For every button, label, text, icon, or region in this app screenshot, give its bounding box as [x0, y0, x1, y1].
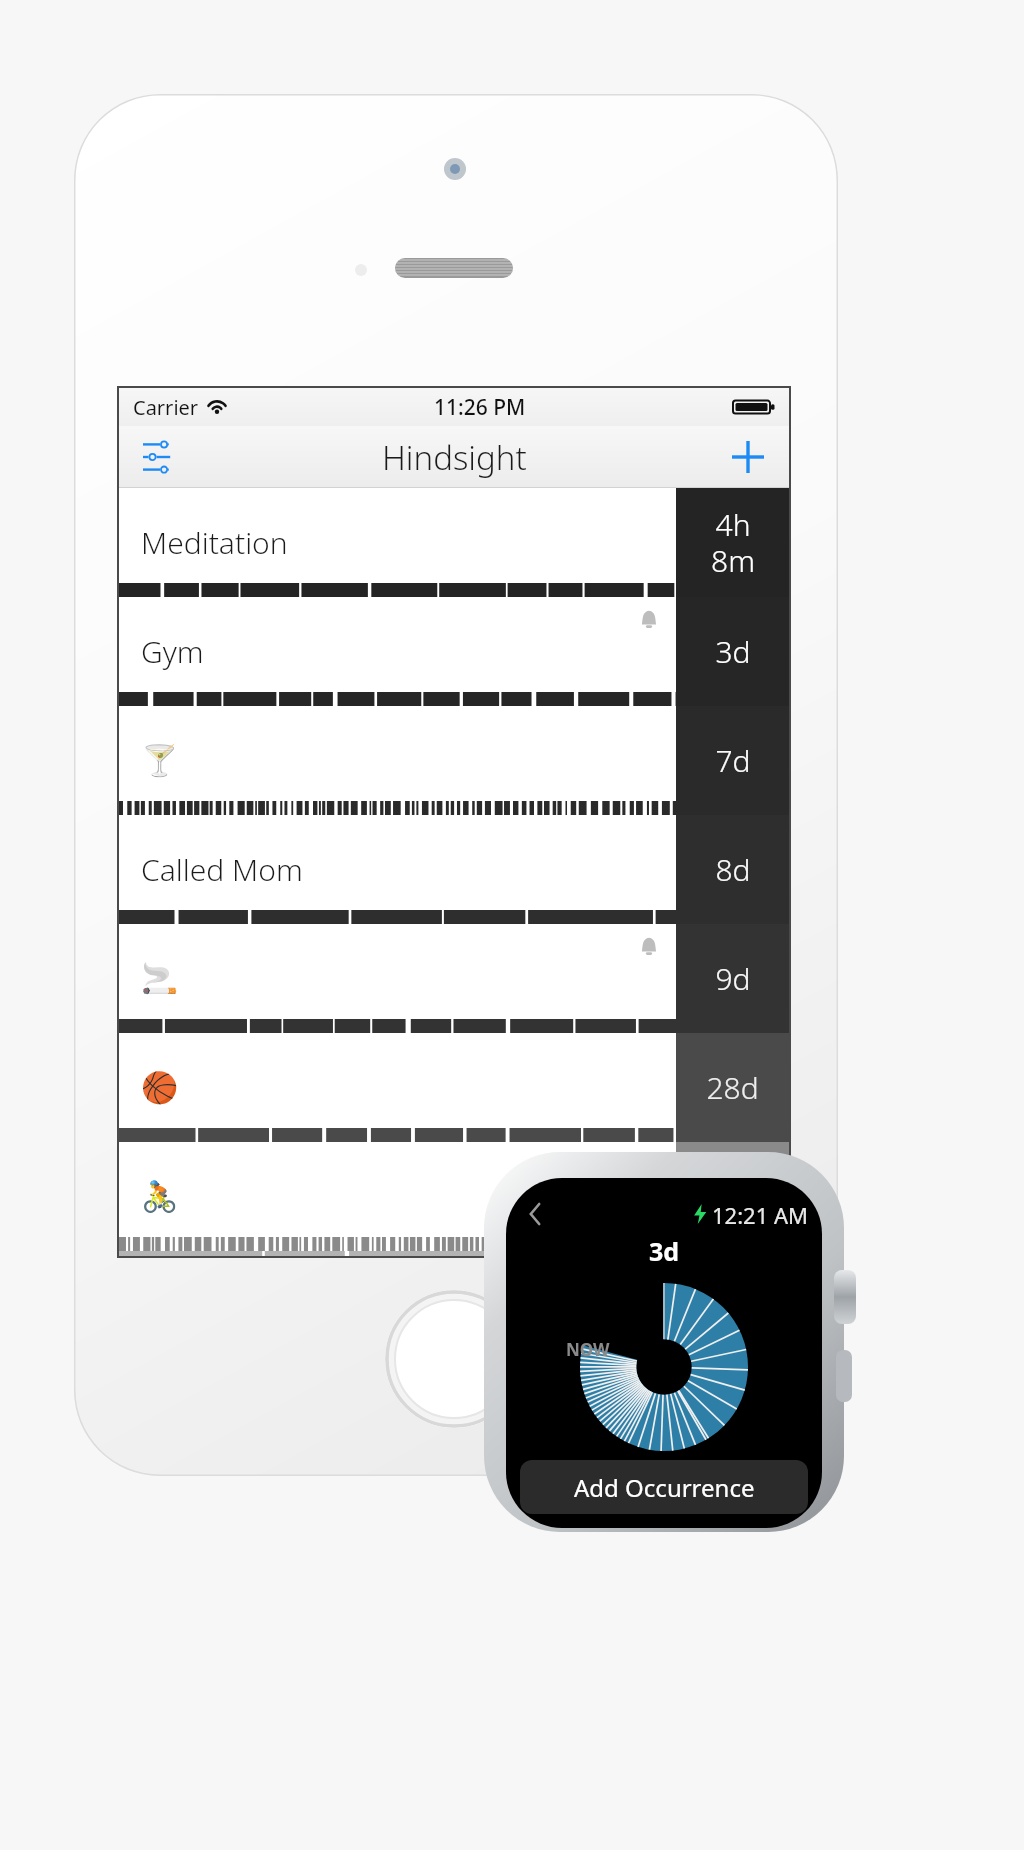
- button[interactable]: Gym: [119, 597, 789, 706]
- staticText: 🏀: [141, 1070, 179, 1105]
- button[interactable]: 🏀: [119, 1033, 789, 1142]
- staticText: 3d: [715, 631, 751, 672]
- staticText: 9d: [715, 958, 751, 999]
- button[interactable]: Meditation: [119, 488, 789, 597]
- staticText: Meditation: [141, 522, 288, 563]
- button[interactable]: Add Occurrence: [520, 1460, 808, 1514]
- staticText: Hindsight: [382, 435, 527, 480]
- staticText: Add Occurrence: [574, 1471, 755, 1504]
- staticText: 🚴: [141, 1179, 179, 1214]
- staticText: 4h 8m: [711, 504, 755, 581]
- staticText: 12:21 AM: [712, 1200, 808, 1228]
- button[interactable]: Called Mom: [119, 815, 789, 924]
- button[interactable]: 🍸: [119, 706, 789, 815]
- staticText: 7d: [715, 740, 751, 781]
- staticText: 28d: [706, 1067, 759, 1108]
- staticText: 3d: [520, 1234, 808, 1268]
- staticText: 62d: [706, 1176, 759, 1217]
- staticText: 8d: [715, 849, 751, 890]
- staticText: Called Mom: [141, 849, 303, 890]
- button[interactable]: Home: [385, 1290, 523, 1428]
- button[interactable]: 🚴: [119, 1142, 789, 1251]
- button[interactable]: 🚬: [119, 924, 789, 1033]
- staticText: NOW: [566, 1338, 610, 1361]
- staticText: Carrier: [133, 394, 199, 421]
- staticText: 🚬: [141, 961, 179, 996]
- staticText: 🍸: [141, 743, 179, 778]
- button[interactable]: Add: [717, 426, 779, 488]
- button[interactable]: Dentist: [119, 1251, 789, 1256]
- button[interactable]: Back: [520, 1200, 550, 1228]
- button[interactable]: Settings: [129, 426, 191, 488]
- staticText: 11:26 PM: [434, 393, 526, 422]
- staticText: Gym: [141, 631, 204, 672]
